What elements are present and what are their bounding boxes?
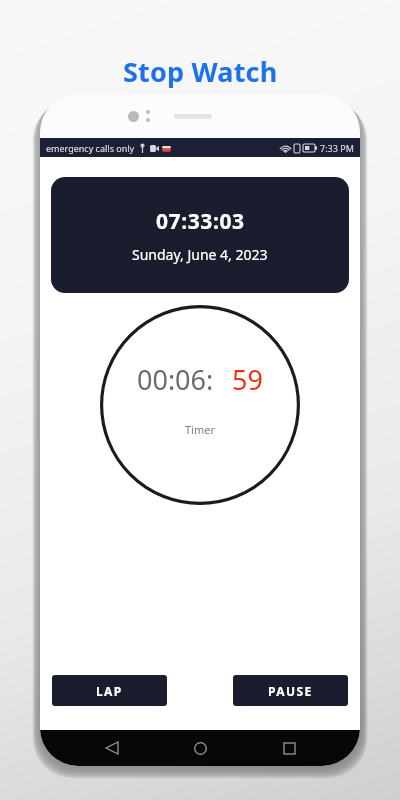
staticText: LAP: [96, 683, 123, 699]
button[interactable]: PAUSE: [233, 675, 348, 706]
button[interactable]: Home: [183, 731, 217, 765]
staticText: Stop Watch: [123, 53, 278, 90]
button[interactable]: Back: [95, 731, 129, 765]
staticText: 00:06:: [137, 361, 214, 398]
staticText: 07:33:03: [156, 207, 245, 236]
staticText: Sunday, June 4, 2023: [132, 245, 268, 264]
staticText: Timer: [185, 422, 215, 437]
staticText: 59: [232, 361, 263, 398]
button[interactable]: Recents: [272, 731, 306, 765]
button[interactable]: LAP: [52, 675, 167, 706]
staticText: PAUSE: [268, 683, 313, 699]
staticText: emergency calls only: [46, 142, 135, 154]
staticText: 7:33 PM: [320, 142, 354, 154]
button[interactable]: 07:33:03: [51, 177, 349, 293]
